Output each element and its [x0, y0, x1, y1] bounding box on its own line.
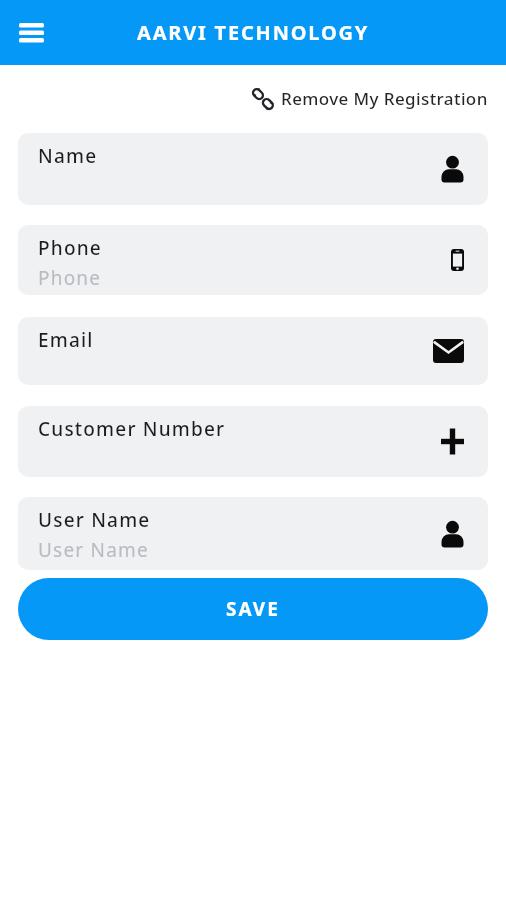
button[interactable]: Remove My Registration	[252, 87, 506, 110]
button[interactable]: SAVE	[18, 578, 488, 640]
staticText: Remove My Registration	[281, 87, 488, 110]
staticText: Email	[38, 327, 94, 353]
button[interactable]: Customer Number	[18, 406, 488, 477]
button[interactable]	[16, 18, 46, 48]
button[interactable]: User Name	[18, 497, 488, 570]
staticText: Phone	[38, 235, 102, 261]
staticText: SAVE	[226, 596, 280, 622]
staticText: Phone	[38, 265, 102, 291]
staticText: Name	[38, 143, 98, 169]
staticText: AARVI TECHNOLOGY	[137, 19, 370, 46]
button[interactable]: Name	[18, 133, 488, 205]
staticText: Customer Number	[38, 416, 226, 442]
staticText: User Name	[38, 537, 149, 563]
staticText: User Name	[38, 507, 151, 533]
button[interactable]: Email	[18, 317, 488, 385]
button[interactable]: Phone	[18, 225, 488, 295]
